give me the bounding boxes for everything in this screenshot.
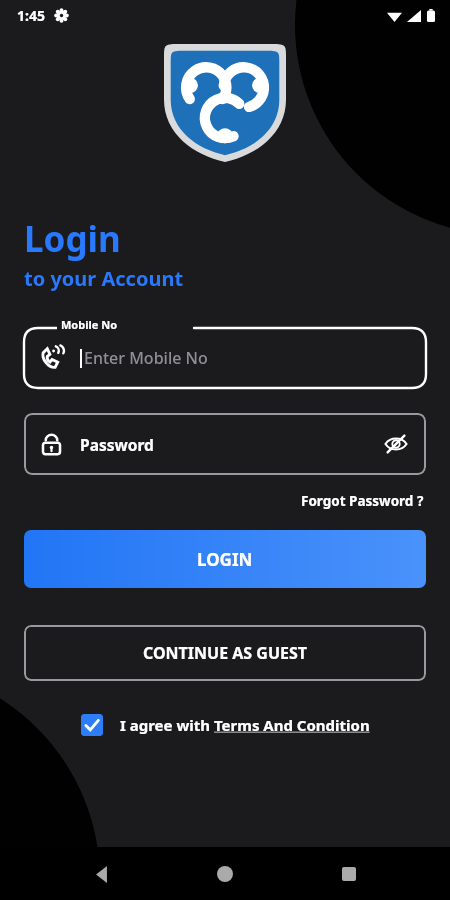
staticText: 1:45 <box>17 6 45 25</box>
button[interactable]: Recent apps <box>326 851 372 897</box>
staticText: Login <box>24 215 121 263</box>
button[interactable]: Enter Mobile No <box>24 328 426 388</box>
staticText: Mobile No <box>61 317 118 332</box>
staticText: Password <box>80 434 154 455</box>
button[interactable]: I agree with terms checkbox <box>81 714 103 736</box>
staticText: Enter Mobile No <box>84 347 208 369</box>
staticText: to your Account <box>24 265 184 292</box>
staticText: Terms And Condition <box>214 715 370 735</box>
staticText: CONTINUE AS GUEST <box>143 642 308 664</box>
button[interactable]: CONTINUE AS GUEST <box>24 625 426 681</box>
staticText: Forgot Password ? <box>301 492 424 510</box>
button[interactable]: LOGIN <box>24 530 426 588</box>
button[interactable]: Home <box>202 851 248 897</box>
staticText: LOGIN <box>197 548 253 571</box>
button[interactable]: Forgot Password ? <box>299 489 426 513</box>
button[interactable]: Show password <box>378 426 414 462</box>
button[interactable]: Back <box>78 851 124 897</box>
staticText: I agree with <box>120 715 214 735</box>
button[interactable]: Terms And Condition <box>214 715 370 735</box>
button[interactable]: Password <box>24 413 426 475</box>
